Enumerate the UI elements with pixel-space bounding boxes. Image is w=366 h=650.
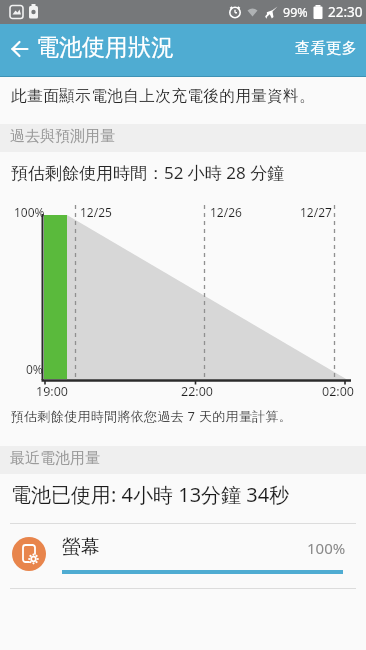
button[interactable]: 螢幕 (0, 524, 366, 588)
staticText: 22:30 (328, 3, 363, 21)
staticText: 螢幕 (62, 535, 100, 559)
staticText: 預估剩餘使用時間：52 小時 28 分鐘 (11, 161, 285, 184)
staticText: 12/26 (210, 204, 242, 220)
staticText: 12/25 (80, 204, 112, 220)
staticText: 電池已使用: 4小時 13分鐘 34秒 (11, 481, 290, 508)
staticText: 此畫面顯示電池自上次充電後的用量資料。 (11, 86, 315, 106)
staticText: 22:00 (181, 383, 213, 400)
staticText: 100% (14, 204, 45, 220)
staticText: 19:00 (36, 383, 68, 400)
staticText: 0% (26, 361, 43, 377)
staticText: 電池使用狀況 (36, 33, 174, 62)
staticText: 最近電池用量 (10, 449, 100, 468)
staticText: 過去與預測用量 (10, 127, 115, 146)
staticText: 預估剩餘使用時間將依您過去 7 天的用量計算。 (11, 407, 293, 425)
staticText: 查看更多 (295, 39, 357, 58)
staticText: 12/27 (300, 204, 332, 220)
staticText: 02:00 (322, 383, 354, 400)
staticText: 100% (307, 538, 346, 558)
button[interactable] (0, 24, 40, 77)
staticText: 99% (283, 4, 308, 21)
button[interactable]: 查看更多 (286, 24, 366, 77)
